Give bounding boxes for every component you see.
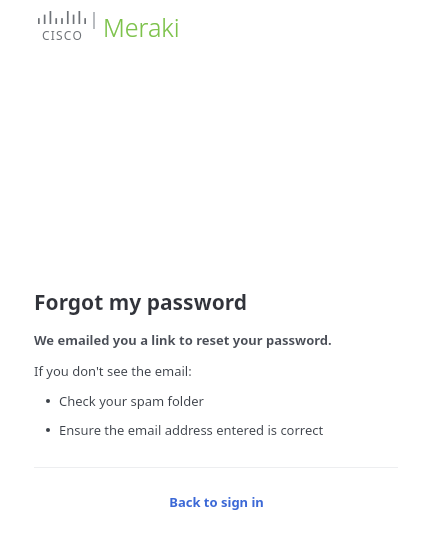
staticText: If you don't see the email: (34, 362, 192, 380)
staticText: Back to sign in (169, 493, 264, 511)
staticText: We emailed you a link to reset your pass… (34, 331, 332, 349)
staticText: CISCO (42, 27, 83, 43)
staticText: Check your spam folder (59, 392, 204, 410)
staticText: Ensure the email address entered is corr… (59, 421, 324, 439)
staticText: Meraki (103, 10, 180, 44)
button[interactable]: Back to sign in (0, 487, 432, 517)
button[interactable]: Cisco Meraki (38, 10, 180, 44)
staticText: Forgot my password (34, 288, 248, 317)
